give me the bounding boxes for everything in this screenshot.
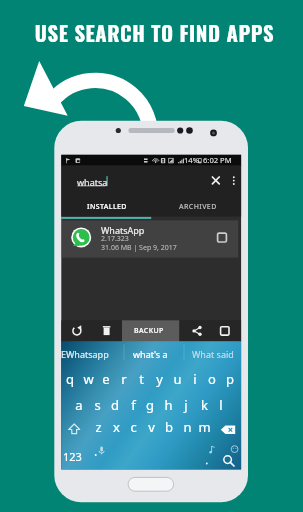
staticText: s [94,396,101,414]
staticText: u [173,370,182,388]
button[interactable]: x [107,415,125,439]
button[interactable]: w [79,367,97,391]
staticText: What said [192,348,234,360]
button[interactable]: o [203,367,221,391]
button[interactable]: y [150,367,168,391]
staticText: ARCHIVED [179,202,217,212]
staticText: USE SEARCH TO FIND APPS [3,17,303,48]
button[interactable]: v [142,415,160,439]
staticText: what's a [133,348,168,360]
staticText: n [183,418,192,436]
button[interactable]: d [106,393,124,417]
button[interactable]: t [132,367,150,391]
button[interactable]: c [124,415,142,439]
button[interactable]: u [168,367,186,391]
staticText: g [146,396,154,414]
staticText: i [193,370,197,388]
staticText: whatsa [77,176,108,188]
staticText: h [164,396,173,414]
staticText: WhatsApp [101,224,145,236]
button[interactable]: g [141,393,159,417]
staticText: EWhatsapp [61,348,109,360]
button[interactable]: s [88,393,106,417]
staticText: l [219,396,223,414]
button[interactable]: a [70,393,88,417]
staticText: 2.17.323 [101,234,129,244]
staticText: 123 [63,449,82,464]
staticText: c [130,418,137,436]
staticText: j [184,396,188,414]
button[interactable]: e [97,367,115,391]
staticText: v [148,418,155,436]
staticText: d [111,396,119,414]
button[interactable]: k [195,393,213,417]
staticText: w [83,370,94,388]
staticText: t [139,370,144,388]
staticText: x [113,418,120,436]
button[interactable]: n [178,415,196,439]
staticText: e [102,370,110,388]
button[interactable]: ARCHIVED [179,202,217,212]
button[interactable]: p [221,367,239,391]
staticText: BACKUP [134,326,164,336]
staticText: p [226,370,234,388]
staticText: b [165,418,173,436]
staticText: q [66,370,74,388]
staticText: o [208,370,216,388]
button[interactable]: b [160,415,178,439]
button[interactable]: f [124,393,142,417]
staticText: a [75,396,83,414]
staticText: 31.06 MB | Sep 9, 2017 [101,243,177,253]
button[interactable]: INSTALLED [87,202,127,212]
button[interactable]: r [115,367,133,391]
staticText: y [156,370,163,388]
button[interactable]: l [212,393,230,417]
staticText: f [131,396,136,414]
staticText: r [121,370,127,388]
button[interactable]: i [186,367,204,391]
staticText: k [201,396,208,414]
staticText: 6:02 PM [203,155,232,165]
button[interactable]: j [177,393,195,417]
button[interactable]: h [159,393,177,417]
button[interactable]: m [195,415,213,439]
button[interactable]: z [89,415,107,439]
button[interactable]: q [61,367,79,391]
staticText: INSTALLED [87,202,127,212]
staticText: z [95,418,102,436]
staticText: 14% [184,155,199,165]
staticText: m [198,418,211,436]
